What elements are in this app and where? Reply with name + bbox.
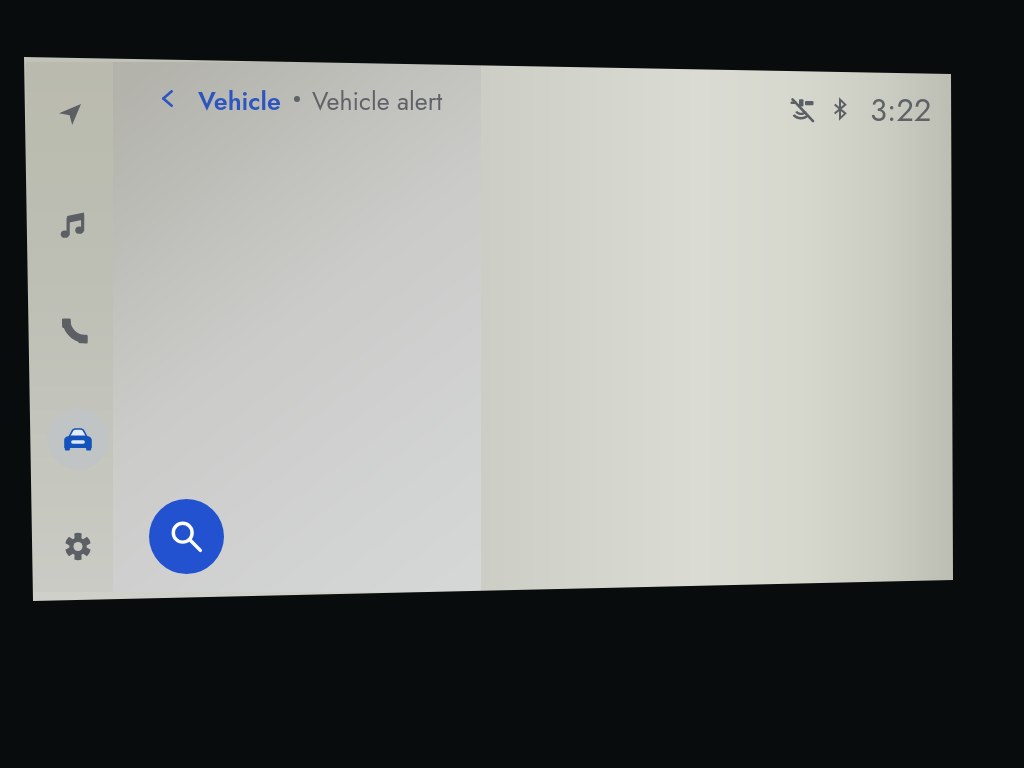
- button[interactable]: Vehicle: [198, 83, 281, 119]
- button[interactable]: Back: [151, 82, 183, 114]
- button[interactable]: Navigation: [39, 83, 101, 145]
- button[interactable]: Bluetooth: [826, 95, 854, 123]
- button[interactable]: Search: [149, 499, 224, 574]
- button[interactable]: Mobile data off: [786, 94, 818, 126]
- button[interactable]: Media: [42, 194, 104, 256]
- button[interactable]: Phone: [43, 300, 105, 362]
- staticText: Vehicle alert: [312, 83, 443, 119]
- button[interactable]: Settings: [47, 515, 109, 577]
- button[interactable]: Vehicle: [47, 408, 109, 470]
- staticText: 3:22: [870, 88, 932, 133]
